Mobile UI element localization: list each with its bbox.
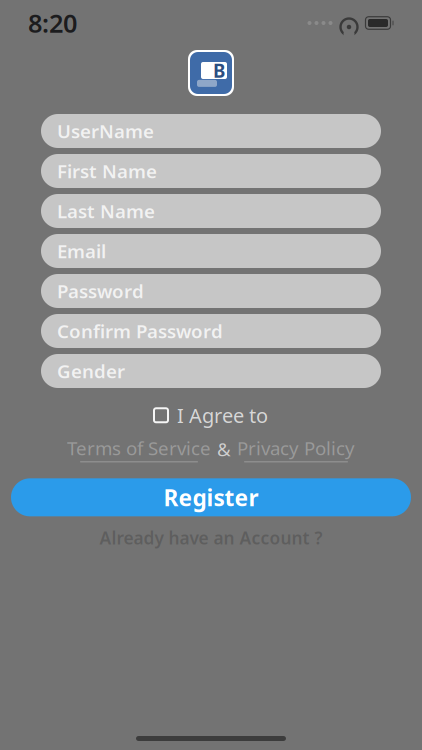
button[interactable]: Already have an Account ?	[99, 526, 322, 549]
staticText: Privacy Policy	[237, 436, 355, 460]
button[interactable]: Gender	[41, 354, 381, 388]
staticText: Already have an Account ?	[99, 526, 322, 549]
button[interactable]: Register	[11, 478, 411, 516]
staticText: First Name	[57, 159, 157, 183]
button[interactable]: I Agree checkbox	[154, 408, 168, 422]
staticText: B	[213, 58, 225, 83]
staticText: I Agree to	[177, 402, 268, 429]
staticText: Last Name	[57, 199, 155, 223]
staticText: Confirm Password	[57, 319, 223, 343]
staticText: Password	[57, 279, 144, 303]
button[interactable]: Terms of Service	[67, 436, 211, 462]
staticText: Gender	[57, 359, 125, 383]
button[interactable]: Confirm Password	[41, 314, 381, 348]
staticText: 8:20	[28, 6, 77, 40]
staticText: Email	[57, 239, 106, 263]
button[interactable]: Email	[41, 234, 381, 268]
staticText: Terms of Service	[67, 436, 211, 460]
button[interactable]: First Name	[41, 154, 381, 188]
button[interactable]: UserName	[41, 114, 381, 148]
staticText: Register	[163, 482, 258, 512]
button[interactable]: Last Name	[41, 194, 381, 228]
button[interactable]: Password	[41, 274, 381, 308]
button[interactable]: Privacy Policy	[237, 436, 355, 462]
staticText: UserName	[57, 119, 154, 143]
staticText: &	[217, 437, 231, 461]
